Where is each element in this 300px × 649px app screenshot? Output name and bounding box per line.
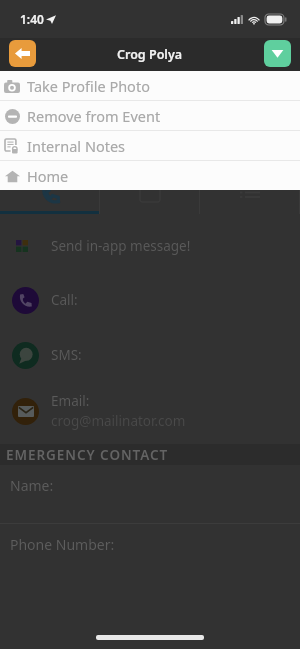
staticText: Phone Number: <box>10 535 115 554</box>
button[interactable]: Email: <box>0 383 300 439</box>
button[interactable]: Send in-app message! <box>0 219 300 273</box>
staticText: 1:40 <box>20 11 44 27</box>
staticText: Take Profile Photo <box>27 76 150 96</box>
button[interactable]: Call: <box>0 273 300 327</box>
staticText: Name: <box>10 476 54 495</box>
staticText: SMS: <box>51 346 82 364</box>
button[interactable]: Remove from Event <box>0 101 300 130</box>
staticText: EMERGENCY CONTACT <box>6 446 169 464</box>
button[interactable]: Tab <box>200 188 300 214</box>
button[interactable]: More options <box>264 40 291 67</box>
staticText: Remove from Event <box>27 106 161 126</box>
staticText: crog@mailinator.com <box>51 412 186 430</box>
staticText: Internal Notes <box>27 136 126 156</box>
staticText: Send in-app message! <box>51 237 191 255</box>
button[interactable]: Phone Number: <box>0 524 300 582</box>
button[interactable]: Home <box>0 161 300 190</box>
button[interactable]: Internal Notes <box>0 131 300 160</box>
staticText: Crog Polya <box>117 46 183 63</box>
button[interactable]: SMS: <box>0 327 300 383</box>
staticText: Home <box>27 166 69 186</box>
button[interactable]: Take Profile Photo <box>0 71 300 100</box>
staticText: Call: <box>51 291 78 309</box>
button[interactable]: Tab <box>100 188 200 214</box>
button[interactable]: Back <box>9 40 36 67</box>
staticText: Email: <box>51 392 90 410</box>
button[interactable]: Tab <box>0 188 100 214</box>
